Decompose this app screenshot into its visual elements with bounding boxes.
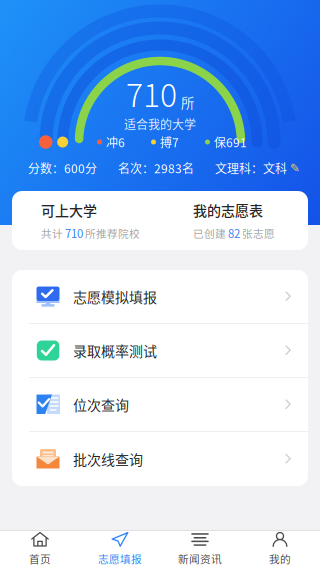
button[interactable]: 批次线查询	[12, 432, 308, 486]
staticText: 710	[126, 70, 177, 116]
staticText: 文理科：文科	[215, 159, 287, 177]
staticText: 张志愿	[242, 225, 275, 241]
staticText: 新闻资讯	[178, 551, 222, 566]
button[interactable]: 志愿模拟填报	[12, 270, 308, 324]
staticText: 分数：600分	[28, 159, 97, 177]
button[interactable]: 我的	[240, 531, 320, 569]
staticText: 搏7	[160, 133, 179, 151]
staticText: 82	[228, 225, 240, 241]
staticText: 可上大学	[41, 200, 97, 220]
staticText: 所	[181, 93, 194, 112]
staticText: 批次线查询	[73, 449, 143, 469]
staticText: 所推荐院校	[85, 225, 140, 241]
staticText: 位次查询	[73, 394, 129, 415]
staticText: 冲6	[106, 133, 125, 151]
staticText: 首页	[29, 551, 51, 566]
staticText: 710	[65, 225, 83, 241]
button[interactable]: 志愿填报	[80, 531, 160, 569]
button[interactable]: 位次查询	[12, 378, 308, 432]
staticText: 志愿模拟填报	[73, 286, 157, 307]
staticText: 录取概率测试	[73, 340, 157, 361]
staticText: 名次：2983名	[118, 159, 194, 177]
staticText: 志愿填报	[98, 551, 142, 566]
staticText: 我的志愿表	[193, 200, 263, 220]
staticText: 适合我的大学	[124, 115, 196, 133]
button[interactable]: 录取概率测试	[12, 324, 308, 378]
button[interactable]: 我的志愿表	[160, 191, 308, 250]
staticText: ✎	[290, 161, 300, 175]
staticText: 我的	[269, 551, 291, 566]
button[interactable]: 首页	[0, 531, 80, 569]
button[interactable]: 可上大学	[12, 191, 160, 250]
staticText: 已创建	[193, 225, 226, 241]
staticText: 共计	[41, 225, 63, 241]
button[interactable]: 新闻资讯	[160, 531, 240, 569]
staticText: 保691	[214, 133, 247, 151]
